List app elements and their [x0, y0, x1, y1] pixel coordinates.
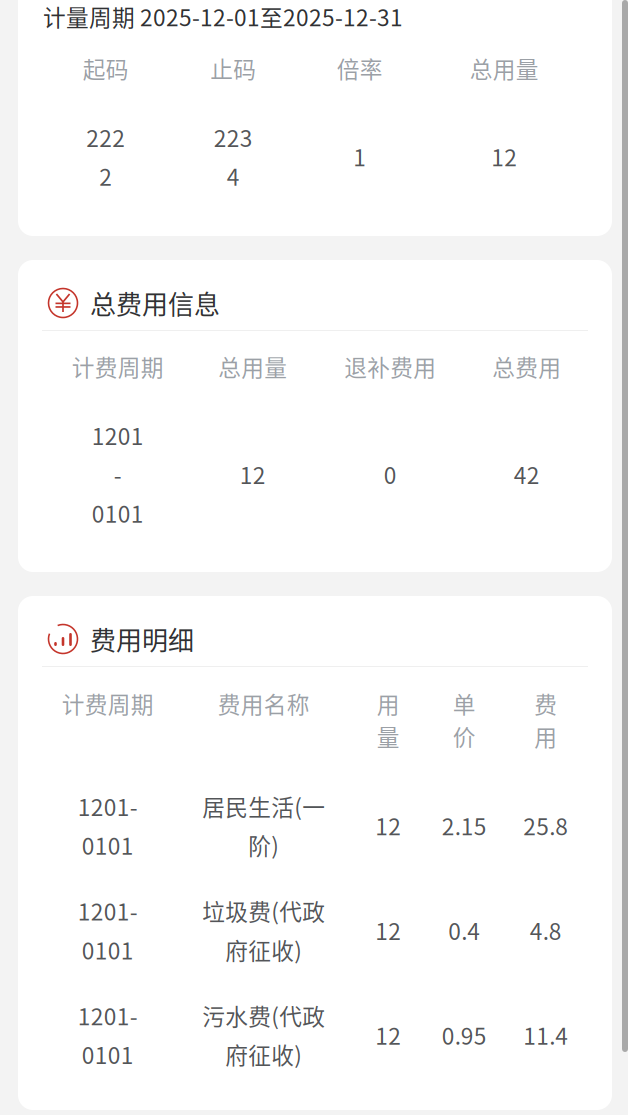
button[interactable]: 计量周期 2025-12-01至2025-12-31 [18, 0, 612, 236]
staticText: 止码 [210, 52, 256, 85]
button[interactable]: 费用明细 [18, 596, 612, 1110]
staticText: 12 [491, 140, 517, 173]
staticText: 12 [375, 914, 401, 946]
staticText: 1 [353, 140, 366, 173]
staticText: 12 [239, 458, 265, 490]
staticText: 222 2 [86, 121, 125, 192]
staticText: 1201 - 0101 [91, 419, 143, 529]
staticText: 223 4 [213, 121, 252, 192]
staticText: 1201- 0101 [77, 790, 137, 861]
button[interactable]: 总费用信息 [18, 260, 612, 572]
staticText: 42 [513, 458, 539, 490]
staticText: 计量周期 2025-12-01至2025-12-31 [43, 0, 403, 33]
staticText: 居民生活(一 阶) [202, 790, 325, 861]
staticText: 总费用信息 [90, 284, 220, 322]
staticText: 用 量 [376, 687, 399, 753]
staticText: 25.8 [523, 809, 568, 842]
staticText: 单 价 [452, 687, 475, 753]
staticText: 12 [375, 809, 401, 842]
staticText: 费用明细 [90, 620, 194, 658]
staticText: 起码 [82, 52, 128, 85]
staticText: 12 [375, 1018, 401, 1051]
staticText: 总费用 [492, 350, 561, 383]
staticText: 总用量 [218, 350, 287, 383]
staticText: 2.15 [441, 809, 486, 842]
staticText: 0 [383, 458, 396, 490]
staticText: 计费周期 [61, 687, 153, 720]
staticText: 4.8 [529, 914, 561, 946]
staticText: 0.95 [441, 1018, 486, 1051]
staticText: 总用量 [469, 52, 538, 85]
staticText: 垃圾费(代政 府征收) [202, 894, 325, 966]
staticText: 退补费用 [344, 350, 436, 383]
staticText: 1201- 0101 [77, 999, 137, 1070]
staticText: 计费周期 [71, 350, 163, 383]
staticText: 费用名称 [217, 687, 309, 720]
staticText: 费 用 [534, 687, 557, 753]
staticText: 1201- 0101 [77, 894, 137, 966]
staticText: 11.4 [523, 1018, 568, 1051]
staticText: 污水费(代政 府征收) [202, 999, 325, 1070]
staticText: 倍率 [336, 52, 382, 85]
staticText: 0.4 [448, 914, 480, 946]
